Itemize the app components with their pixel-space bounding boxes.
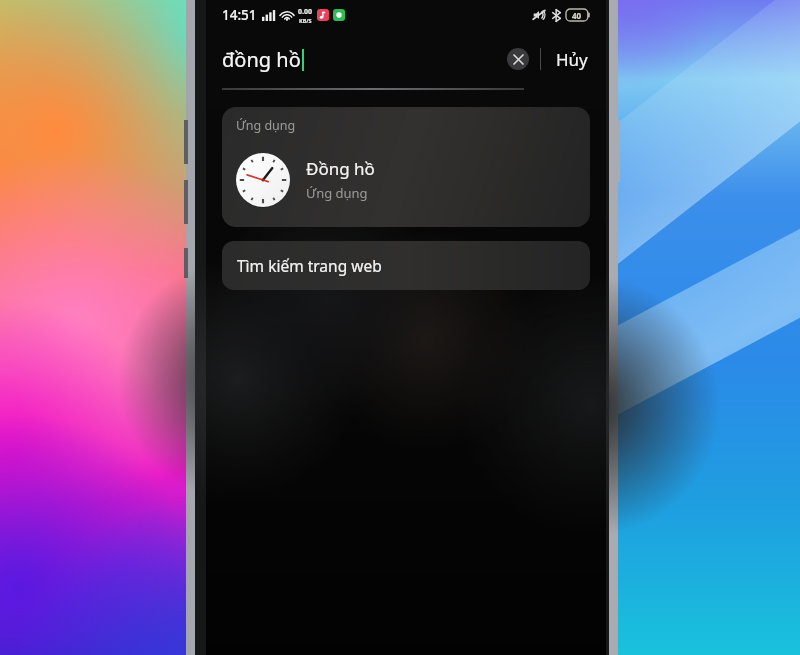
button[interactable]: Tìm kiếm trang web bbox=[222, 241, 590, 290]
button[interactable]: Hủy bbox=[552, 44, 592, 75]
button[interactable]: Đồng hồ bbox=[222, 140, 590, 219]
staticText: đồng hồ bbox=[222, 46, 301, 73]
button[interactable]: Clear search bbox=[507, 48, 529, 70]
staticText: 0.00 bbox=[298, 7, 312, 17]
staticText: KB/S bbox=[299, 17, 312, 24]
staticText: Hủy bbox=[556, 48, 588, 71]
staticText: Ứng dụng bbox=[306, 184, 368, 202]
staticText: 14:51 bbox=[222, 6, 257, 24]
staticText: Ứng dụng bbox=[236, 117, 296, 134]
staticText: Đồng hồ bbox=[306, 157, 375, 180]
staticText: Tìm kiếm trang web bbox=[237, 255, 382, 276]
staticText: 40 bbox=[572, 10, 582, 21]
